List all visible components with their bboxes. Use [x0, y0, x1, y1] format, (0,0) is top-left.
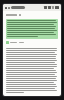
button[interactable]	[6, 48, 58, 94]
button[interactable]	[6, 14, 58, 16]
button[interactable]: Highlight note	[6, 41, 58, 44]
button[interactable]	[6, 19, 58, 39]
